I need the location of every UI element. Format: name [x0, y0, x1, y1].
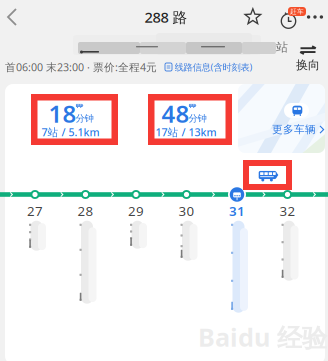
staticText: 288 路: [144, 7, 187, 27]
staticText: 29: [128, 202, 144, 220]
staticText: 站: [276, 40, 288, 55]
button[interactable]: 18: [31, 94, 118, 145]
button[interactable]: 48: [148, 94, 232, 145]
button[interactable]: 更多车辆: [238, 84, 325, 153]
button[interactable]: 27: [10, 202, 60, 361]
staticText: 赶车: [290, 7, 304, 16]
button[interactable]: 线路信息(含时刻表): [165, 61, 252, 73]
staticText: 更多车辆: [272, 123, 316, 136]
staticText: 17站 / 13km: [155, 125, 216, 139]
button[interactable]: 31: [212, 202, 262, 361]
button[interactable]: 29: [111, 202, 161, 361]
button[interactable]: More options: [302, 4, 328, 30]
staticText: 18: [48, 98, 76, 129]
button[interactable]: 换向: [293, 44, 323, 74]
staticText: 分钟: [188, 113, 206, 124]
button[interactable]: Catch-the-bus alert: [272, 4, 298, 30]
staticText: 线路信息(含时刻表): [174, 61, 252, 73]
staticText: 32: [279, 202, 295, 220]
button[interactable]: Favourite: [240, 4, 266, 30]
staticText: 首06:00 末23:00 · 票价:全程4元: [5, 60, 157, 74]
button[interactable]: Back: [0, 4, 29, 30]
staticText: Baidu 经验: [198, 320, 327, 354]
staticText: 换向: [296, 58, 320, 72]
button[interactable]: 28: [60, 202, 111, 361]
button[interactable]: 32: [262, 202, 313, 361]
staticText: 31: [229, 202, 245, 220]
staticText: 7站 / 5.1km: [41, 125, 99, 139]
button[interactable]: 30: [161, 202, 212, 361]
staticText: 28: [77, 202, 93, 220]
staticText: 30: [178, 202, 194, 220]
staticText: 27: [27, 202, 43, 220]
staticText: 分钟: [75, 113, 93, 124]
staticText: 48: [161, 98, 189, 129]
